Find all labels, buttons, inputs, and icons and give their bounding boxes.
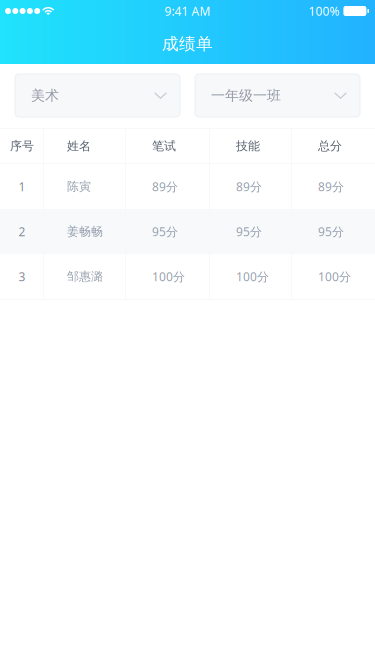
staticText: 100分 [236, 268, 269, 285]
staticText: 89分 [236, 178, 262, 195]
staticText: 95分 [318, 223, 344, 240]
button[interactable]: 美术 [15, 74, 180, 117]
staticText: 100分 [318, 268, 351, 285]
staticText: 1 [18, 178, 25, 195]
staticText: 美术 [31, 87, 59, 104]
staticText: 3 [18, 268, 25, 285]
staticText: 笔试 [152, 138, 176, 153]
staticText: 邹惠潞 [67, 269, 103, 284]
button[interactable]: 一年级一班 [195, 74, 360, 117]
staticText: 89分 [318, 178, 344, 195]
staticText: 姓名 [67, 138, 91, 153]
staticText: 总分 [318, 138, 342, 153]
staticText: 技能 [236, 138, 260, 153]
staticText: 9:41 AM [164, 3, 210, 19]
staticText: 姜畅畅 [67, 224, 103, 239]
staticText: 序号 [10, 138, 34, 153]
staticText: 100分 [152, 268, 185, 285]
staticText: 95分 [236, 223, 262, 240]
staticText: 成绩单 [162, 33, 213, 54]
staticText: 100% [308, 3, 339, 19]
staticText: 89分 [152, 178, 178, 195]
staticText: 一年级一班 [211, 87, 281, 104]
staticText: 陈寅 [67, 179, 91, 194]
staticText: 95分 [152, 223, 178, 240]
staticText: 2 [18, 223, 25, 240]
